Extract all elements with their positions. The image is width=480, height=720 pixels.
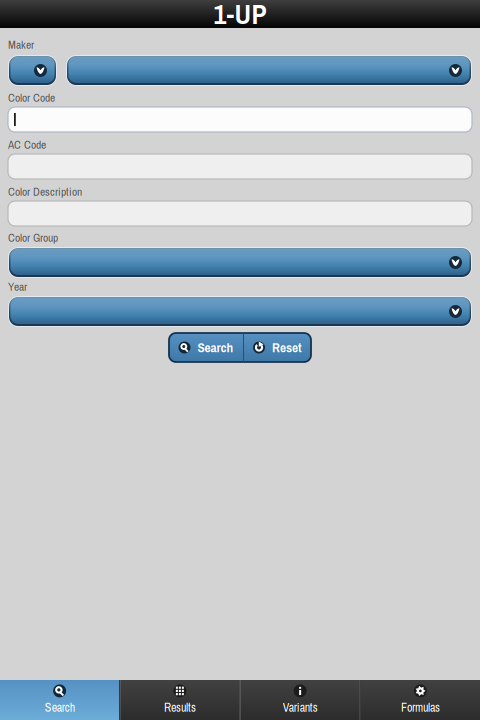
button[interactable]: Color Code (8, 107, 472, 132)
staticText: AC Code (8, 137, 46, 152)
staticText: Color Code (8, 90, 55, 105)
staticText: Maker (8, 37, 34, 52)
staticText: Color Group (8, 230, 58, 245)
staticText: Color Description (8, 184, 82, 199)
button[interactable]: Maker type (8, 55, 57, 86)
staticText: Search (197, 338, 233, 356)
staticText: Variants (283, 699, 318, 716)
button[interactable]: Maker (66, 55, 472, 86)
button[interactable]: Search (169, 333, 243, 362)
button[interactable]: AC Code (8, 154, 472, 179)
button[interactable]: Search (0, 680, 119, 720)
button[interactable]: Reset (244, 333, 311, 362)
button[interactable]: Color Description (8, 201, 472, 226)
button[interactable]: Color Group (8, 247, 472, 278)
button[interactable]: Formulas (361, 680, 480, 720)
button[interactable]: Results (120, 680, 239, 720)
staticText: Reset (272, 338, 302, 356)
staticText: Formulas (401, 699, 440, 716)
staticText: 1-UP (213, 0, 266, 33)
staticText: Search (45, 699, 75, 716)
staticText: Year (8, 279, 27, 294)
staticText: Results (164, 699, 196, 716)
button[interactable]: Variants (240, 680, 360, 720)
button[interactable]: Year (8, 296, 472, 327)
